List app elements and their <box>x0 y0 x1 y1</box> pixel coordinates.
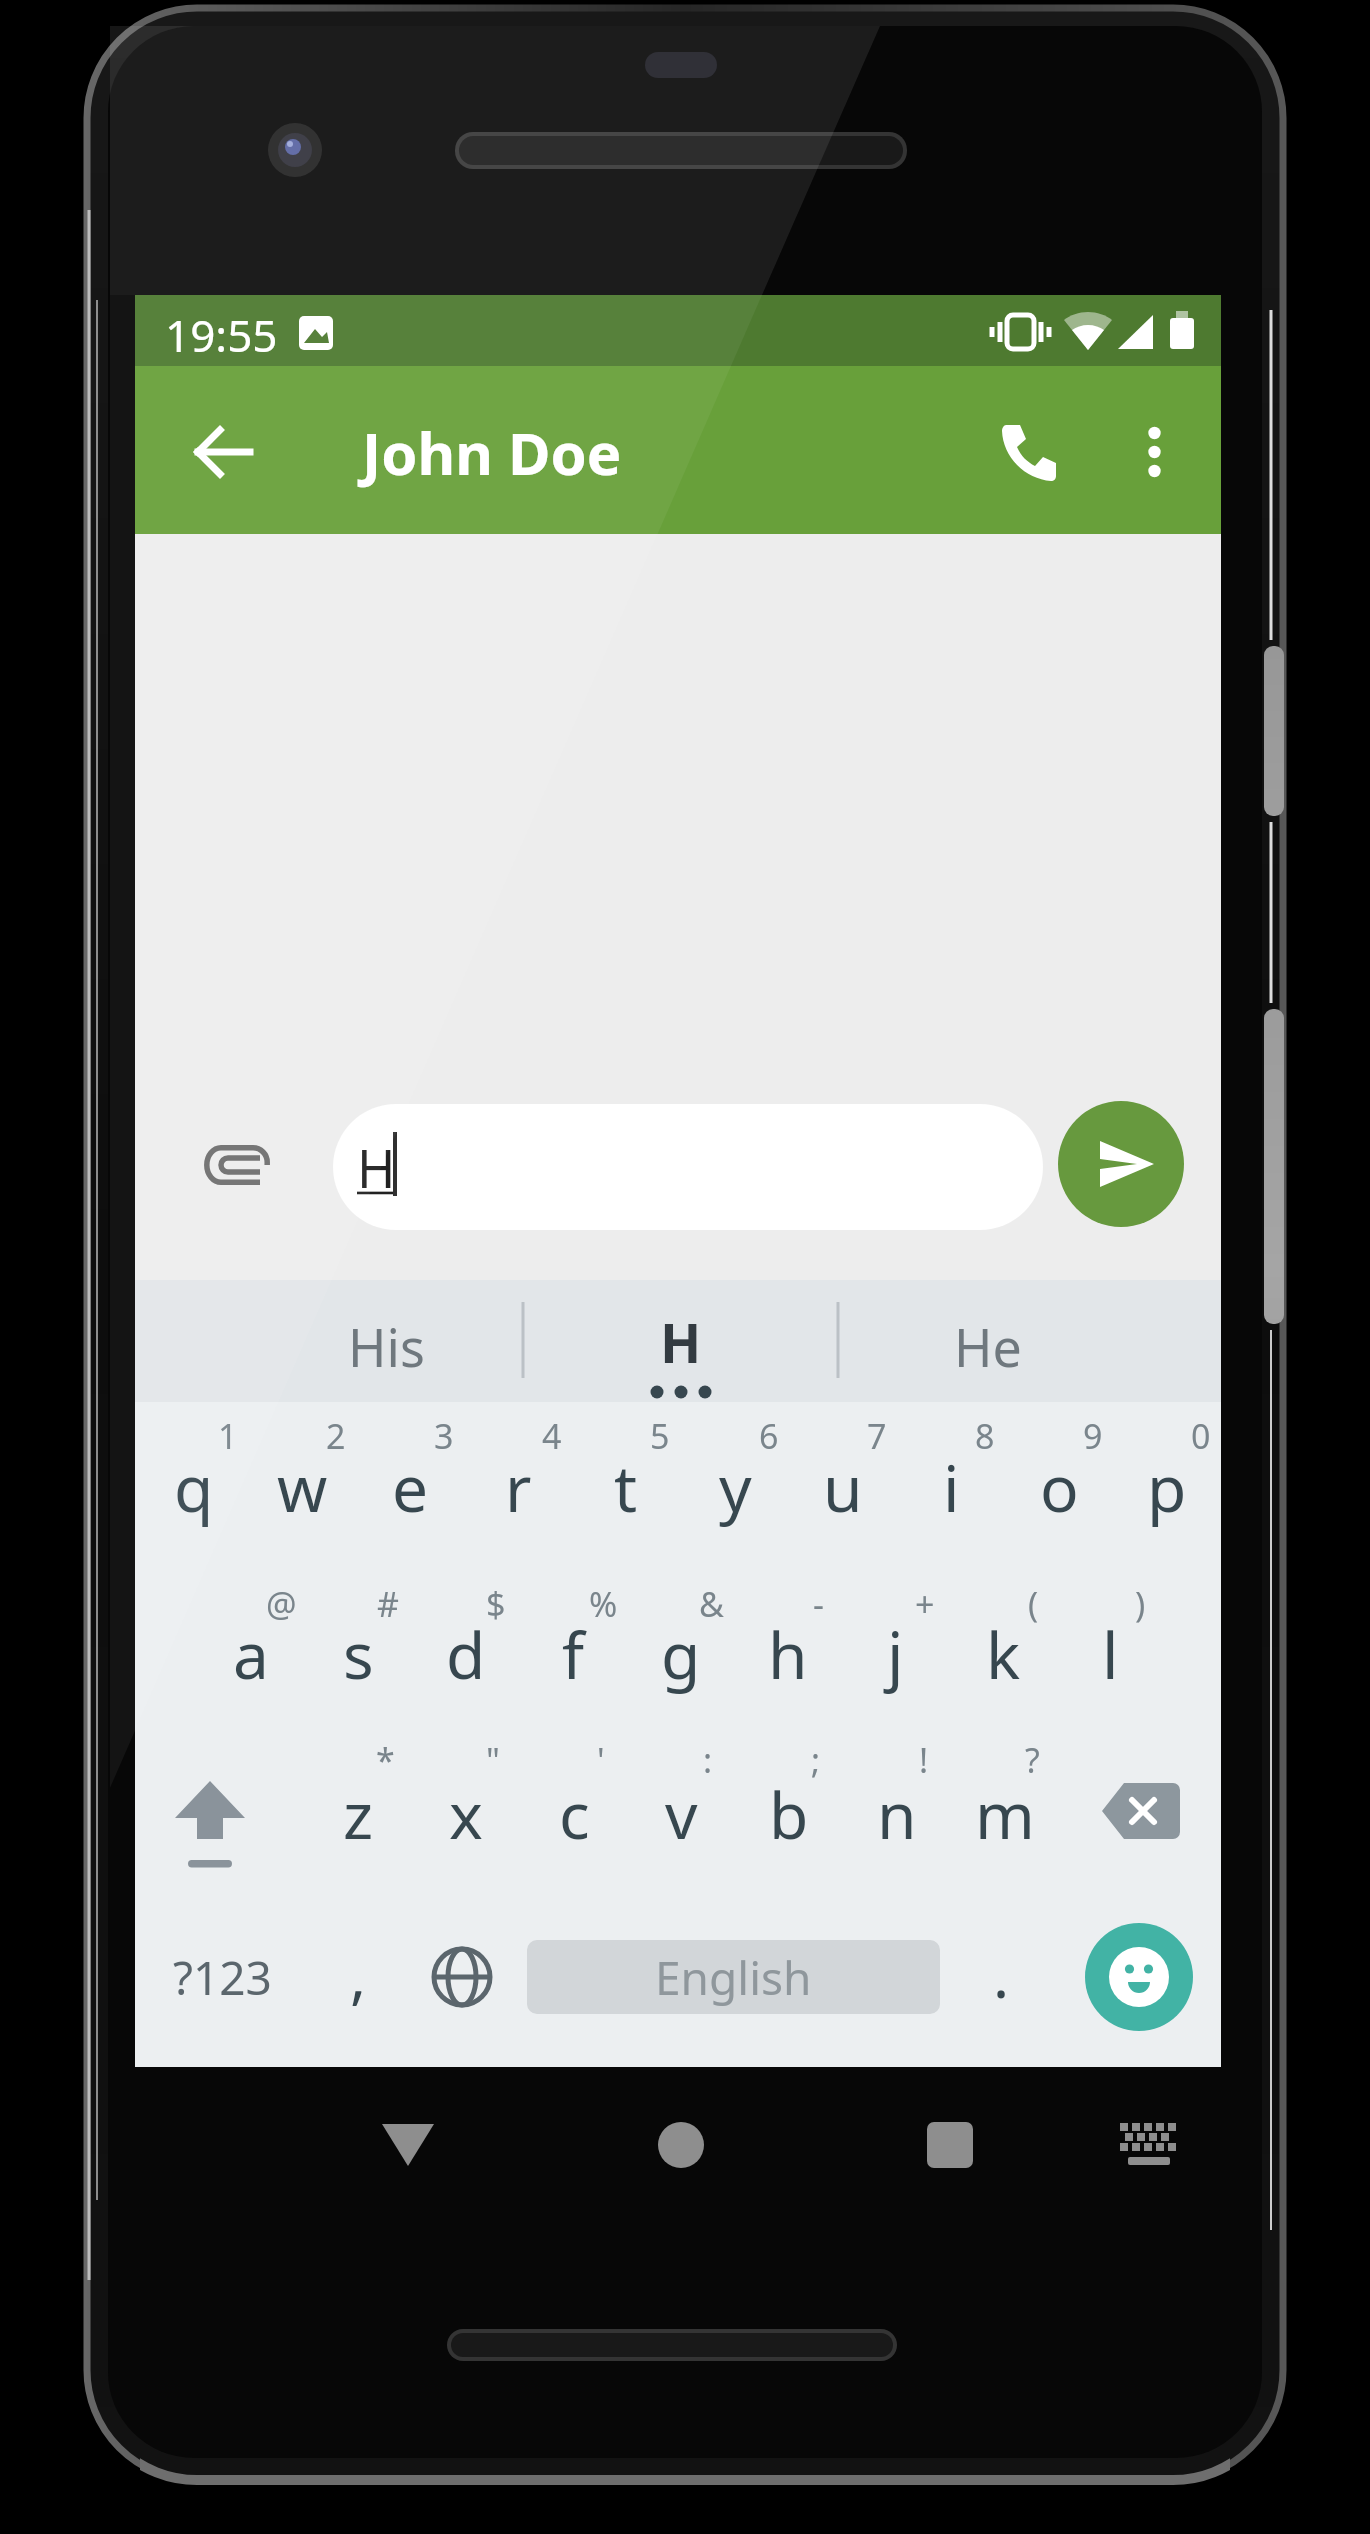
button[interactable]: o <box>1005 1433 1113 1541</box>
button[interactable]: n <box>843 1760 951 1868</box>
button[interactable]: q <box>140 1433 248 1541</box>
staticText: $ <box>486 1581 506 1627</box>
staticText: He <box>954 1311 1022 1382</box>
staticText: b <box>769 1771 809 1858</box>
button[interactable] <box>1085 1923 1193 2031</box>
staticText: x <box>449 1771 483 1858</box>
staticText: 3 <box>434 1413 454 1459</box>
button[interactable] <box>1100 398 1208 506</box>
staticText: r <box>505 1444 532 1531</box>
button[interactable] <box>1076 1750 1206 1872</box>
button[interactable] <box>145 1768 275 1880</box>
staticText: , <box>350 1934 367 2016</box>
staticText: t <box>614 1444 638 1531</box>
button[interactable]: j <box>841 1600 949 1708</box>
staticText: k <box>986 1611 1021 1698</box>
staticText: - <box>813 1581 824 1627</box>
button[interactable]: , <box>304 1921 412 2029</box>
button[interactable] <box>402 1917 522 2037</box>
staticText: ' <box>597 1737 605 1783</box>
button[interactable]: d <box>412 1600 520 1708</box>
staticText: 7 <box>867 1413 887 1459</box>
staticText: 0 <box>1191 1413 1211 1459</box>
staticText: 1 <box>218 1413 238 1459</box>
staticText: j <box>887 1611 904 1698</box>
staticText: y <box>719 1444 752 1531</box>
staticText: a <box>233 1611 269 1698</box>
button[interactable]: f <box>519 1600 627 1708</box>
staticText: q <box>174 1444 214 1531</box>
button[interactable]: z <box>304 1760 412 1868</box>
button[interactable]: m <box>951 1760 1059 1868</box>
staticText: & <box>699 1581 724 1627</box>
button[interactable] <box>348 2085 468 2205</box>
button[interactable]: s <box>304 1600 412 1708</box>
staticText: o <box>1040 1444 1079 1531</box>
staticText: ( <box>1028 1581 1039 1627</box>
staticText: e <box>392 1444 429 1531</box>
staticText: w <box>277 1444 328 1531</box>
staticText: H <box>660 1305 702 1379</box>
button[interactable]: He <box>858 1296 1118 1396</box>
button[interactable]: i <box>897 1433 1005 1541</box>
staticText: m <box>975 1771 1035 1858</box>
staticText: l <box>1102 1611 1119 1698</box>
button[interactable]: a <box>197 1600 305 1708</box>
staticText: i <box>943 1444 960 1531</box>
staticText: 9 <box>1083 1413 1103 1459</box>
staticText: : <box>703 1737 713 1783</box>
staticText: g <box>661 1611 701 1698</box>
button[interactable]: H <box>551 1292 811 1392</box>
button[interactable]: H <box>333 1104 1043 1230</box>
staticText: English <box>655 1946 812 2009</box>
button[interactable]: r <box>464 1433 572 1541</box>
button[interactable]: b <box>735 1760 843 1868</box>
staticText: 19:55 <box>165 305 278 365</box>
button[interactable] <box>975 398 1083 506</box>
staticText: H <box>357 1132 396 1203</box>
button[interactable]: v <box>627 1760 735 1868</box>
button[interactable]: t <box>572 1433 680 1541</box>
button[interactable]: His <box>256 1296 516 1396</box>
staticText: # <box>377 1581 399 1627</box>
staticText: His <box>348 1311 425 1382</box>
staticText: ) <box>1135 1581 1146 1627</box>
staticText: u <box>823 1444 863 1531</box>
staticText: f <box>562 1611 585 1698</box>
staticText: ! <box>919 1737 929 1783</box>
staticText: % <box>589 1581 618 1627</box>
button[interactable]: x <box>412 1760 520 1868</box>
button[interactable] <box>890 2085 1010 2205</box>
staticText: ? <box>1025 1737 1040 1783</box>
staticText: 5 <box>650 1413 670 1459</box>
button[interactable] <box>1089 2085 1209 2205</box>
staticText: d <box>446 1611 486 1698</box>
staticText: . <box>993 1934 1010 2016</box>
button[interactable]: w <box>248 1433 356 1541</box>
button[interactable]: h <box>734 1600 842 1708</box>
button[interactable]: k <box>949 1600 1057 1708</box>
button[interactable]: c <box>520 1760 628 1868</box>
button[interactable]: p <box>1113 1433 1221 1541</box>
button[interactable] <box>1058 1101 1184 1227</box>
button[interactable] <box>180 1110 290 1220</box>
button[interactable]: English <box>527 1940 940 2014</box>
button[interactable]: ?123 <box>152 1917 292 2037</box>
staticText: * <box>376 1737 395 1783</box>
button[interactable] <box>170 398 278 506</box>
button[interactable]: u <box>789 1433 897 1541</box>
button[interactable]: g <box>627 1600 735 1708</box>
staticText: 2 <box>326 1413 346 1459</box>
staticText: John Doe <box>362 413 622 492</box>
staticText: ?123 <box>173 1946 272 2009</box>
button[interactable]: y <box>681 1433 789 1541</box>
staticText: z <box>343 1771 374 1858</box>
button[interactable]: . <box>947 1921 1055 2029</box>
staticText: + <box>915 1581 935 1627</box>
button[interactable]: l <box>1056 1600 1164 1708</box>
staticText: v <box>665 1771 698 1858</box>
button[interactable] <box>621 2085 741 2205</box>
staticText: ; <box>811 1737 821 1783</box>
staticText: h <box>768 1611 808 1698</box>
button[interactable]: e <box>356 1433 464 1541</box>
